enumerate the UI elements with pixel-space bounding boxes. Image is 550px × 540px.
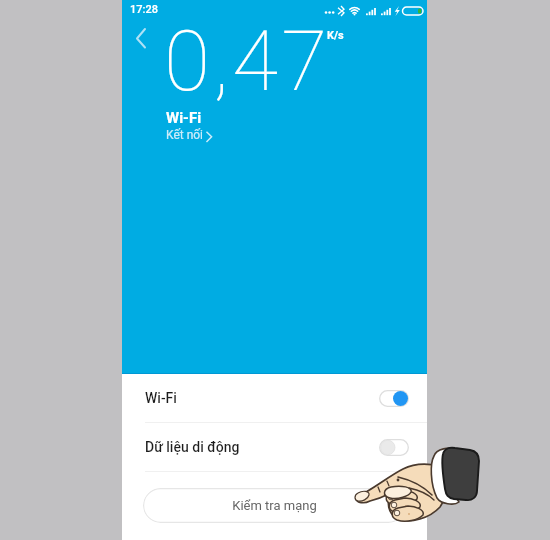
staticText: 0,47 [164, 12, 331, 110]
staticText: Wi-Fi [145, 390, 177, 406]
button[interactable]: Wi-Fi [122, 374, 427, 422]
button[interactable]: Dữ liệu di động off [379, 439, 409, 456]
button[interactable]: Kết nối [166, 128, 214, 142]
staticText: K/s [327, 29, 344, 42]
button[interactable]: Kiểm tra mạng [143, 488, 406, 523]
button[interactable]: Back [130, 26, 155, 51]
staticText: 17:28 [130, 3, 158, 16]
staticText: Kết nối [166, 128, 204, 142]
staticText: Kiểm tra mạng [232, 498, 317, 513]
staticText: Wi-Fi [166, 109, 202, 127]
staticText: Dữ liệu di động [145, 439, 240, 455]
button[interactable]: Dữ liệu di động [122, 423, 427, 471]
button[interactable]: Wi-Fi on [379, 390, 409, 407]
